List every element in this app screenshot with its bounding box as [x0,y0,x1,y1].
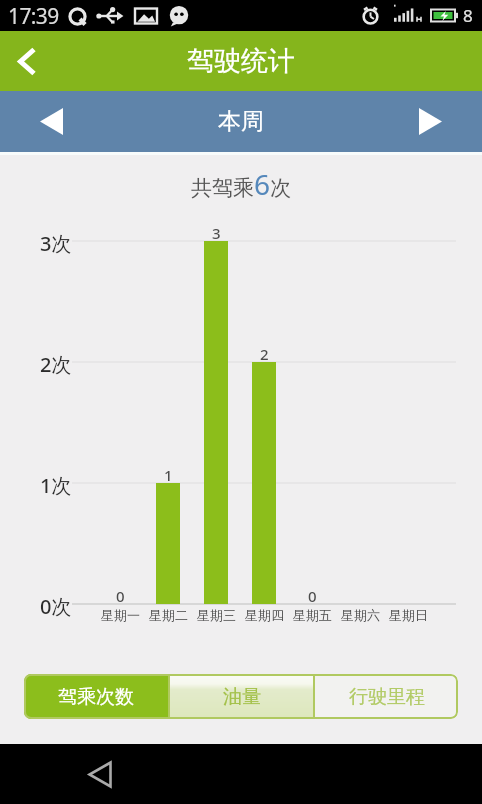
staticText: 星期日 [389,607,428,623]
staticText: 2 [260,344,269,364]
staticText: 17:39 [8,2,59,31]
staticText: 油量 [223,685,261,709]
staticText: 驾驶统计 [187,44,295,78]
button[interactable]: Back [78,752,122,796]
staticText: 0次 [40,593,72,620]
button[interactable]: 驾乘次数 [24,674,168,719]
staticText: 驾乘次数 [58,685,134,709]
staticText: 星期四 [245,607,284,623]
staticText: 1次 [40,472,72,499]
staticText: 0 [116,586,125,606]
button[interactable]: Back [0,35,52,87]
staticText: 本周 [218,107,264,136]
staticText: 星期三 [197,607,236,623]
staticText: 3 [212,223,221,243]
staticText: 3次 [40,230,72,257]
staticText: 星期一 [101,607,140,623]
button[interactable]: 行驶里程 [315,674,458,719]
staticText: 星期二 [149,607,188,623]
staticText: 8 [463,4,473,27]
button[interactable]: Previous week [28,98,75,145]
staticText: 2次 [40,351,72,378]
staticText: 星期六 [341,607,380,623]
button[interactable]: 油量 [170,674,313,719]
staticText: 星期五 [293,607,332,623]
staticText: 0 [308,586,317,606]
staticText: 行驶里程 [349,685,425,709]
staticText: 1 [164,465,173,485]
button[interactable]: Next week [407,98,454,145]
staticText: 共驾乘6次 [191,165,292,203]
